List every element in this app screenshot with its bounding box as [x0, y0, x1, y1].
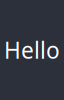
staticText: Hello — [4, 35, 60, 65]
